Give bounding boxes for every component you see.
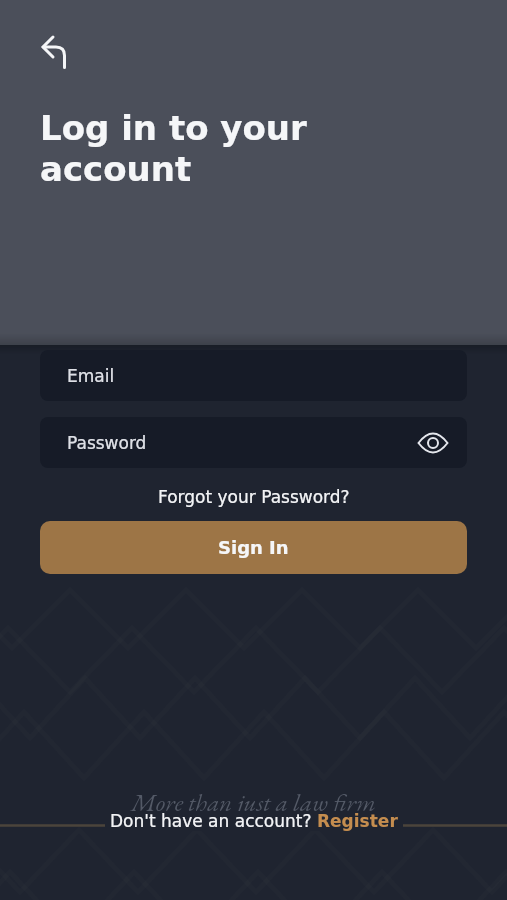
button[interactable]: Email <box>40 350 467 401</box>
staticText: Email <box>67 366 115 386</box>
staticText: Sign In <box>218 537 289 558</box>
button[interactable]: Forgot your Password? <box>158 487 350 507</box>
button[interactable] <box>32 26 76 76</box>
staticText: Password <box>67 433 147 453</box>
button[interactable]: Sign In <box>40 521 467 574</box>
staticText: More than just a law firm <box>131 786 376 819</box>
staticText: Don't have an account? <box>110 811 317 831</box>
button[interactable]: Don't have an account? <box>110 811 398 831</box>
staticText: Log in to your account <box>40 108 307 190</box>
staticText: Register <box>317 811 398 831</box>
button[interactable]: Password <box>40 417 467 468</box>
